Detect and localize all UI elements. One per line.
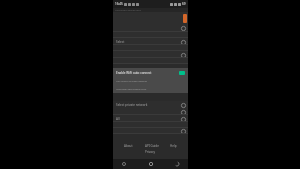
button[interactable] bbox=[113, 45, 188, 51]
button[interactable] bbox=[113, 32, 188, 38]
button[interactable]: Toggle auto connect bbox=[179, 71, 185, 75]
button[interactable]: Profile bbox=[183, 14, 187, 23]
button[interactable]: Select bbox=[113, 38, 188, 45]
staticText: Select private network bbox=[116, 103, 148, 107]
button[interactable]: Options bbox=[180, 25, 186, 31]
button[interactable]: Privacy bbox=[144, 149, 157, 155]
button[interactable]: Options bbox=[113, 24, 188, 32]
button[interactable]: Recents bbox=[172, 159, 182, 169]
button[interactable]: Options bbox=[180, 116, 186, 122]
staticText: 69 bbox=[182, 2, 186, 6]
staticText: 16:45 bbox=[115, 2, 123, 6]
button[interactable]: About bbox=[123, 143, 134, 149]
button[interactable]: API Guide bbox=[144, 143, 160, 149]
button[interactable]: Options bbox=[180, 102, 186, 108]
button[interactable]: Options bbox=[180, 109, 186, 115]
button[interactable]: Back bbox=[119, 159, 129, 169]
button[interactable] bbox=[113, 58, 188, 64]
button[interactable]: Options bbox=[113, 51, 188, 58]
button[interactable] bbox=[113, 122, 188, 128]
button[interactable]: Notify when new network found bbox=[113, 85, 188, 93]
button[interactable]: Options bbox=[180, 128, 186, 134]
staticText: About bbox=[124, 144, 133, 148]
staticText: Auto connect to known networks bbox=[116, 80, 147, 83]
button[interactable]: Help bbox=[169, 143, 178, 149]
button[interactable]: Options bbox=[113, 109, 188, 115]
button[interactable]: Options bbox=[180, 52, 186, 58]
staticText: Notify when new network found bbox=[116, 88, 147, 91]
staticText: Select bbox=[116, 40, 125, 44]
staticText: API Guide bbox=[145, 144, 159, 148]
button[interactable]: Profile bbox=[113, 12, 188, 24]
staticText: Privacy bbox=[145, 150, 156, 154]
staticText: Help bbox=[170, 144, 177, 148]
button[interactable]: Home bbox=[146, 159, 156, 169]
staticText: Enable WiFi auto connect bbox=[116, 71, 152, 75]
staticText: Autoconnect settings menu bbox=[115, 9, 141, 12]
button[interactable]: Options bbox=[180, 39, 186, 45]
button[interactable]: Options bbox=[113, 128, 188, 134]
button[interactable]: All bbox=[113, 115, 188, 122]
button[interactable]: Select private network bbox=[113, 101, 188, 109]
staticText: All bbox=[116, 117, 120, 121]
button[interactable]: Enable WiFi auto connect bbox=[113, 68, 188, 77]
button[interactable]: Auto connect to known networks bbox=[113, 77, 188, 85]
